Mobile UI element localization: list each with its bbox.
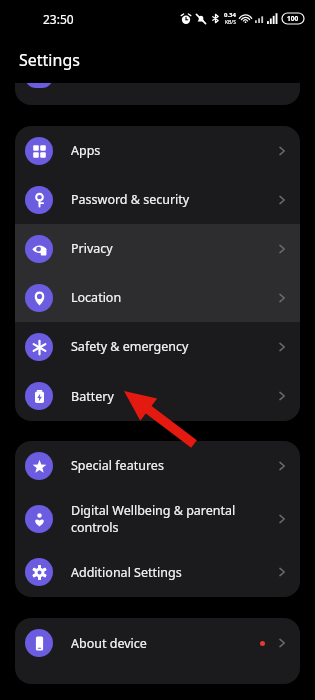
- other: Open Special features: [276, 460, 288, 472]
- staticText: Apps: [71, 142, 101, 159]
- other: Open Location: [276, 292, 288, 304]
- staticText: Password & security: [71, 191, 190, 208]
- button[interactable]: Special features: [15, 441, 300, 490]
- staticText: Location: [71, 289, 122, 306]
- other: Open Digital Wellbeing & parental contro…: [276, 513, 288, 525]
- other: Open Battery: [276, 390, 288, 402]
- staticText: Safety & emergency: [71, 338, 189, 355]
- button[interactable]: Battery: [15, 371, 300, 421]
- button[interactable]: Password & security: [15, 175, 300, 224]
- button[interactable]: Apps: [15, 126, 300, 175]
- staticText: Digital Wellbeing & parental controls: [71, 502, 276, 535]
- staticText: 0.34: [224, 11, 236, 19]
- staticText: KB/S: [225, 19, 236, 26]
- button[interactable]: Privacy: [15, 224, 300, 273]
- staticText: Special features: [71, 457, 164, 474]
- other: Open About device: [276, 637, 288, 649]
- button[interactable]: Digital Wellbeing & parental controls: [15, 490, 300, 547]
- button[interactable]: Additional Settings: [15, 547, 300, 597]
- other: Open Password & security: [276, 194, 288, 206]
- button[interactable]: Location: [15, 273, 300, 322]
- other: Open Privacy: [276, 243, 288, 255]
- button[interactable]: Safety & emergency: [15, 322, 300, 371]
- button[interactable]: About device: [15, 618, 300, 668]
- staticText: Battery: [71, 388, 114, 405]
- staticText: 100: [287, 14, 299, 23]
- other: Open Apps: [276, 145, 288, 157]
- staticText: Settings: [19, 49, 80, 71]
- staticText: About device: [71, 635, 147, 652]
- other: Open Safety & emergency: [276, 341, 288, 353]
- staticText: Additional Settings: [71, 564, 182, 581]
- other: Open Additional Settings: [276, 566, 288, 578]
- staticText: 23:50: [43, 11, 74, 27]
- staticText: Privacy: [71, 240, 113, 257]
